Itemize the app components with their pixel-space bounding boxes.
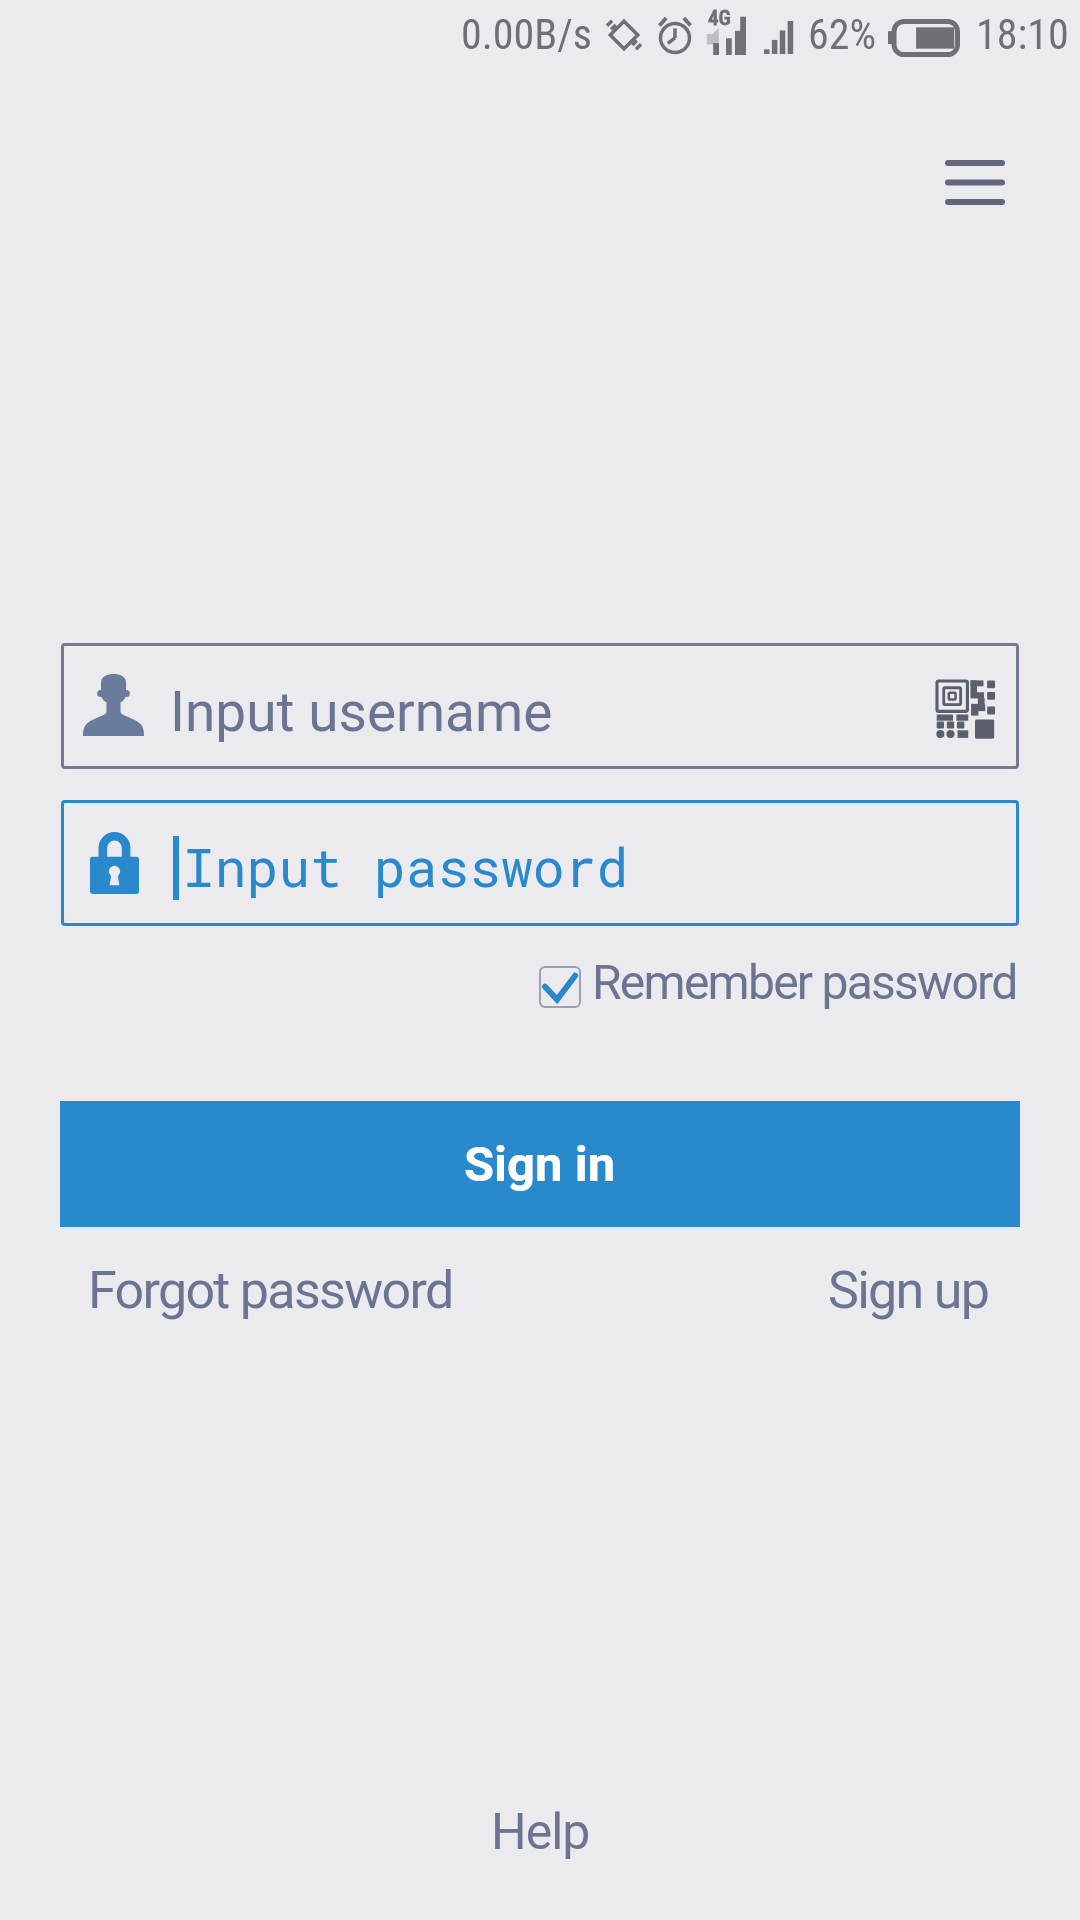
staticText: Sign in [464,1136,616,1193]
button[interactable]: Sign up [798,1240,1019,1340]
staticText: Input username [170,680,553,744]
button[interactable]: Input password [61,800,1019,926]
staticText: 4G [708,6,731,31]
button[interactable]: Input username [61,643,1019,769]
staticText: 62% [808,10,877,59]
staticText: Remember password [592,954,1017,1010]
staticText: Forgot password [88,1260,453,1321]
button[interactable]: Remember password [539,947,1017,1027]
button[interactable]: Sign in [60,1101,1020,1227]
button[interactable]: Forgot password [58,1240,483,1340]
staticText: Sign up [828,1260,989,1321]
button[interactable]: Help [455,1784,625,1880]
staticText: 18:10 [976,10,1069,59]
button[interactable]: Scan QR code [923,667,1009,753]
staticText: Input password [183,831,629,901]
button[interactable]: Menu [920,127,1030,237]
staticText: 0.00B/s [461,10,592,59]
staticText: Help [491,1803,590,1862]
